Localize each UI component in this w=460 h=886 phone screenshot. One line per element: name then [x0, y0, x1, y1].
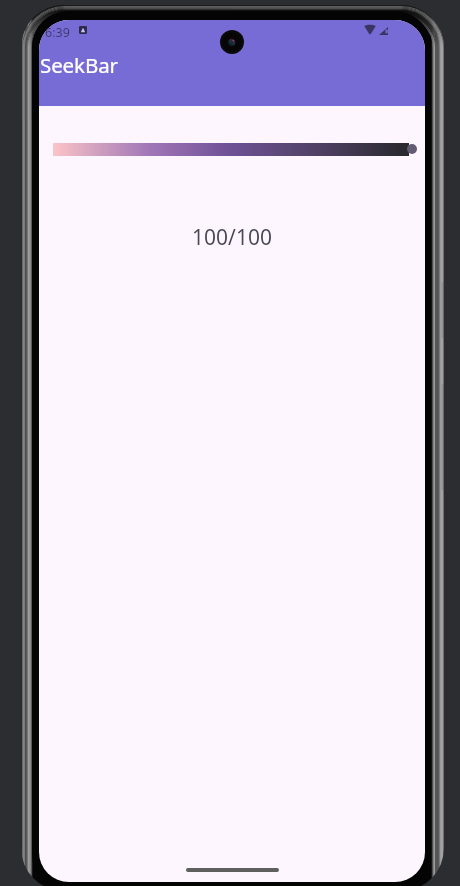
button[interactable]: Seek bar [39, 137, 425, 161]
staticText: 100/100 [39, 223, 425, 252]
staticText: SeekBar [40, 51, 118, 79]
staticText: 6:39 [45, 24, 70, 41]
